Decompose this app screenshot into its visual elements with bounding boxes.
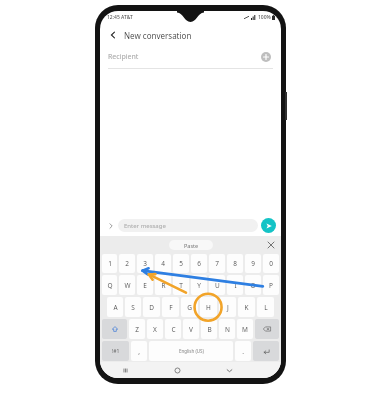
button[interactable]: Home xyxy=(151,362,203,378)
button[interactable]: L xyxy=(257,297,274,317)
button[interactable]: G xyxy=(181,297,198,317)
staticText: 0 xyxy=(269,259,273,268)
button[interactable]: Hide keyboard xyxy=(203,362,255,378)
staticText: L xyxy=(264,303,268,312)
staticText: K xyxy=(244,303,249,312)
staticText: I xyxy=(234,281,237,290)
button[interactable]: V xyxy=(183,319,199,339)
staticText: U xyxy=(215,281,220,290)
button[interactable]: Z xyxy=(129,319,145,339)
staticText: B xyxy=(207,325,212,334)
button[interactable]: Paste xyxy=(169,240,213,250)
button[interactable]: Shift xyxy=(102,319,127,339)
staticText: 2 xyxy=(125,259,129,268)
staticText: 4 xyxy=(161,259,165,268)
button[interactable]: Add recipient xyxy=(259,50,273,64)
button[interactable]: T xyxy=(173,275,189,295)
button[interactable]: A xyxy=(107,297,123,317)
button[interactable]: 5 xyxy=(173,254,189,273)
button[interactable]: More options xyxy=(105,220,117,232)
staticText: 5 xyxy=(179,259,183,268)
staticText: J xyxy=(227,303,229,312)
staticText: 7 xyxy=(215,259,219,268)
staticText: New conversation xyxy=(124,30,192,41)
staticText: V xyxy=(189,325,193,334)
button[interactable]: 3 xyxy=(137,254,153,273)
button[interactable]: Q xyxy=(102,275,117,295)
staticText: 8 xyxy=(233,259,237,268)
button[interactable]: Enter message xyxy=(118,219,258,232)
button[interactable]: , xyxy=(131,341,147,361)
staticText: W xyxy=(124,281,131,290)
staticText: R xyxy=(161,281,166,290)
staticText: 6 xyxy=(197,259,201,268)
button[interactable]: 7 xyxy=(209,254,225,273)
button[interactable]: B xyxy=(201,319,217,339)
staticText: G xyxy=(187,303,192,312)
button[interactable]: X xyxy=(147,319,163,339)
staticText: Q xyxy=(107,281,113,290)
staticText: N xyxy=(225,325,230,334)
button[interactable]: P xyxy=(263,275,279,295)
staticText: 12:45 AT&T xyxy=(107,14,133,21)
staticText: !#1 xyxy=(112,348,120,355)
button[interactable]: J xyxy=(219,297,236,317)
staticText: X xyxy=(153,325,157,334)
button[interactable]: Recents xyxy=(100,362,151,378)
staticText: English (US) xyxy=(179,348,204,354)
staticText: H xyxy=(206,303,211,312)
button[interactable]: 4 xyxy=(155,254,171,273)
staticText: 3 xyxy=(143,259,147,268)
staticText: 9 xyxy=(251,259,255,268)
button[interactable]: 8 xyxy=(227,254,243,273)
button[interactable]: C xyxy=(165,319,181,339)
staticText: T xyxy=(179,281,183,290)
button[interactable]: H xyxy=(200,297,217,317)
button[interactable]: Send xyxy=(261,218,276,233)
button[interactable]: Enter xyxy=(253,341,279,361)
staticText: M xyxy=(242,325,248,334)
button[interactable]: Back xyxy=(105,27,121,43)
button[interactable]: O xyxy=(245,275,261,295)
staticText: , xyxy=(138,347,140,356)
staticText: O xyxy=(250,281,256,290)
staticText: F xyxy=(169,303,173,312)
staticText: Paste xyxy=(184,242,199,249)
button[interactable]: S xyxy=(125,297,141,317)
button[interactable]: N xyxy=(219,319,235,339)
button[interactable]: M xyxy=(237,319,253,339)
button[interactable]: 2 xyxy=(119,254,135,273)
button[interactable]: Backspace xyxy=(255,319,279,339)
staticText: Y xyxy=(197,281,201,290)
staticText: S xyxy=(131,303,135,312)
staticText: D xyxy=(149,303,154,312)
staticText: P xyxy=(269,281,273,290)
button[interactable]: !#1 xyxy=(102,341,129,361)
button[interactable]: 9 xyxy=(245,254,261,273)
staticText: C xyxy=(171,325,176,334)
button[interactable]: 0 xyxy=(263,254,279,273)
button[interactable]: K xyxy=(238,297,255,317)
button[interactable]: W xyxy=(119,275,135,295)
staticText: 100% xyxy=(258,14,271,21)
staticText: 1 xyxy=(108,259,112,268)
button[interactable]: . xyxy=(235,341,251,361)
button[interactable]: E xyxy=(137,275,153,295)
button[interactable]: R xyxy=(155,275,171,295)
staticText: Z xyxy=(135,325,139,334)
button[interactable]: U xyxy=(209,275,225,295)
button[interactable]: I xyxy=(227,275,243,295)
staticText: A xyxy=(113,303,118,312)
button[interactable]: Y xyxy=(191,275,207,295)
staticText: . xyxy=(242,347,244,356)
button[interactable]: English (US) xyxy=(149,341,233,361)
staticText: E xyxy=(143,281,147,290)
button[interactable]: 6 xyxy=(191,254,207,273)
staticText: Recipient xyxy=(108,52,259,62)
button[interactable]: F xyxy=(162,297,179,317)
button[interactable]: Close suggestion xyxy=(265,239,276,250)
button[interactable]: 1 xyxy=(102,254,117,273)
staticText: Enter message xyxy=(124,222,166,230)
button[interactable]: D xyxy=(143,297,160,317)
